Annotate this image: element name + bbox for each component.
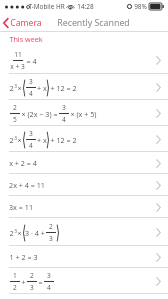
- staticText: 3: [29, 77, 33, 86]
- staticText: =: [38, 277, 43, 287]
- staticText: + 12 = 2: [50, 83, 77, 93]
- staticText: 2: [9, 135, 14, 145]
- staticText: Camera: [10, 17, 42, 29]
- staticText: × (x + 5): [70, 109, 97, 119]
- button[interactable]: 2: [0, 218, 168, 246]
- staticText: 3: [62, 103, 66, 112]
- staticText: 3: [14, 83, 17, 90]
- staticText: 2: [13, 283, 17, 292]
- staticText: 2: [9, 228, 14, 238]
- staticText: × (2x − 3) =: [21, 109, 58, 119]
- staticText: 2x + 4 = 11: [9, 180, 45, 190]
- staticText: 14:28: [77, 2, 94, 11]
- staticText: ×: [17, 228, 22, 238]
- button[interactable]: x + 2 = 4: [0, 152, 168, 174]
- staticText: 4: [29, 141, 33, 150]
- staticText: 4: [62, 115, 66, 124]
- staticText: 3: [49, 234, 53, 243]
- staticText: This week: [9, 34, 43, 44]
- staticText: + 12 = 2: [50, 135, 77, 145]
- staticText: T-Mobile HR: [28, 2, 65, 11]
- button[interactable]: 2: [0, 100, 168, 126]
- staticText: 2: [49, 222, 53, 231]
- button[interactable]: Camera: [3, 17, 42, 29]
- staticText: 3: [29, 129, 33, 138]
- staticText: ×: [17, 83, 22, 93]
- staticText: 1: [13, 271, 17, 280]
- staticText: 3: [30, 283, 34, 292]
- staticText: 3: [47, 271, 51, 280]
- staticText: 3: [14, 135, 17, 142]
- staticText: 3: [14, 228, 17, 235]
- staticText: 5: [13, 115, 17, 124]
- staticText: Recently Scanned: [57, 17, 130, 29]
- staticText: 2: [30, 271, 34, 280]
- staticText: 4: [29, 89, 33, 98]
- staticText: + x: [37, 83, 47, 93]
- button[interactable]: 1: [0, 268, 168, 294]
- button[interactable]: 2x + 4 = 11: [0, 174, 168, 196]
- button[interactable]: 11: [0, 46, 168, 74]
- staticText: 2: [9, 83, 14, 93]
- staticText: ×: [17, 135, 22, 145]
- staticText: 98%: [134, 2, 147, 11]
- staticText: x + 3: [10, 62, 25, 71]
- staticText: x + 2 = 4: [9, 158, 37, 168]
- button[interactable]: 3x = 11: [0, 196, 168, 218]
- button[interactable]: 1 + 2 = 3: [0, 246, 168, 268]
- staticText: + x: [37, 135, 47, 145]
- button[interactable]: 2: [0, 74, 168, 100]
- staticText: 1 + 2 = 3: [9, 252, 38, 262]
- staticText: 4: [47, 283, 51, 292]
- staticText: = 4: [26, 56, 37, 66]
- staticText: 3 · 4 +: [25, 228, 45, 238]
- staticText: 2: [13, 103, 17, 112]
- button[interactable]: 2: [0, 126, 168, 152]
- staticText: +: [21, 277, 26, 287]
- staticText: 11: [14, 50, 22, 59]
- staticText: 3x = 11: [9, 202, 33, 212]
